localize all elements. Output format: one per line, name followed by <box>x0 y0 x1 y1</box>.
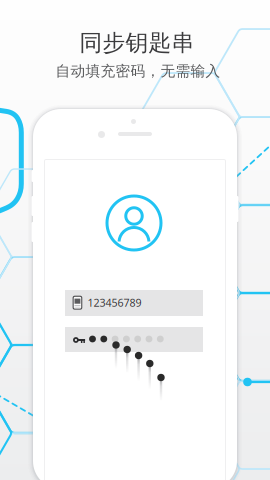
staticText: 123456789 <box>87 295 141 310</box>
staticText: 同步钥匙串 <box>79 29 194 57</box>
staticText: 自动填充密码，无需输入 <box>55 62 220 80</box>
